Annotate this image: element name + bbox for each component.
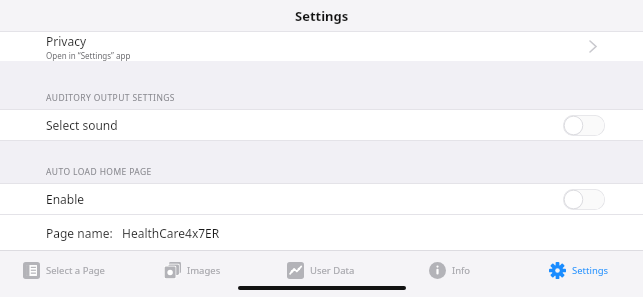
button[interactable]: Settings bbox=[514, 256, 643, 284]
button[interactable]: Enable bbox=[0, 184, 643, 214]
staticText: Privacy bbox=[46, 33, 87, 49]
button[interactable]: Page name: bbox=[0, 215, 643, 250]
button[interactable]: User Data bbox=[256, 256, 385, 284]
staticText: HealthCare4x7ER bbox=[122, 225, 220, 241]
button[interactable]: Select sound bbox=[0, 110, 643, 140]
staticText: Select a Page bbox=[46, 264, 105, 277]
button[interactable]: Select sound bbox=[563, 115, 605, 136]
staticText: AUTO LOAD HOME PAGE bbox=[46, 166, 152, 178]
button[interactable]: Images bbox=[128, 256, 256, 284]
button[interactable]: Select a Page bbox=[0, 256, 128, 284]
staticText: Page name: bbox=[46, 225, 113, 241]
staticText: Open in “Settings” app bbox=[46, 50, 131, 61]
staticText: User Data bbox=[310, 264, 355, 277]
staticText: Settings bbox=[572, 264, 609, 277]
button[interactable]: Privacy bbox=[0, 32, 643, 61]
staticText: Images bbox=[187, 264, 221, 277]
staticText: Info bbox=[452, 264, 471, 277]
other: Settings bbox=[549, 262, 566, 279]
staticText: AUDITORY OUTPUT SETTINGS bbox=[46, 92, 175, 104]
button[interactable]: Info bbox=[385, 256, 514, 284]
staticText: Settings bbox=[295, 7, 349, 25]
staticText: Enable bbox=[46, 191, 85, 207]
button[interactable]: Enable bbox=[563, 189, 605, 210]
staticText: Select sound bbox=[46, 117, 118, 133]
